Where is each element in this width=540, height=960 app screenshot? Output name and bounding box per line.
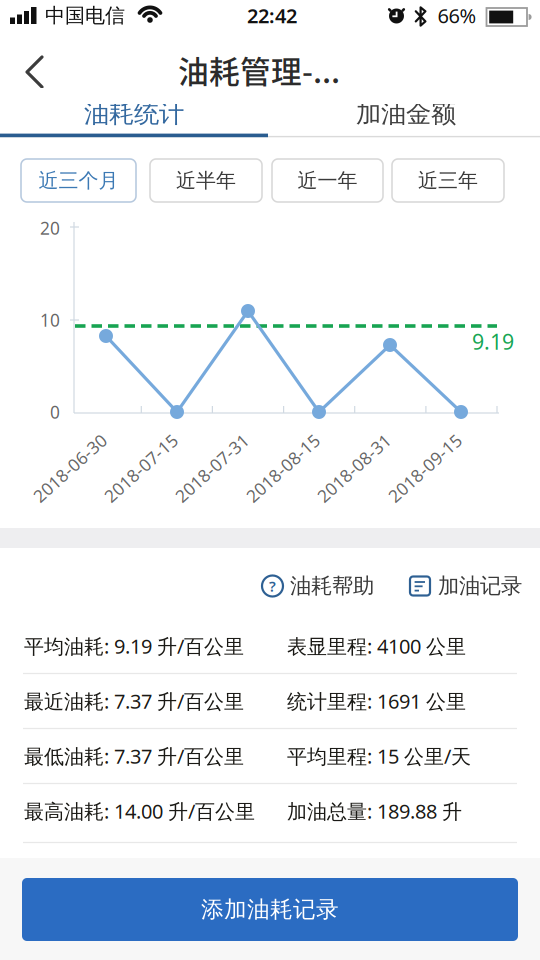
staticText: 油耗帮助: [290, 573, 374, 599]
staticText: 表显里程: 4100 公里: [287, 633, 466, 659]
staticText: 加油记录: [438, 573, 522, 599]
button[interactable]: 近三年: [392, 159, 504, 202]
staticText: 10: [40, 308, 60, 331]
staticText: 2018-07-15: [95, 456, 187, 479]
staticText: 22:42: [247, 2, 297, 29]
button[interactable]: 加油金额: [272, 93, 540, 133]
staticText: 统计里程: 1691 公里: [287, 688, 466, 714]
staticText: 20: [40, 216, 60, 239]
staticText: 油耗统计: [84, 98, 184, 129]
staticText: 近一年: [297, 168, 357, 193]
staticText: 油耗管理-...: [178, 48, 340, 92]
staticText: 2018-08-15: [237, 456, 329, 479]
button[interactable]: 添加油耗记录: [22, 878, 518, 941]
staticText: 0: [50, 400, 60, 423]
staticText: 中国电信: [45, 3, 125, 28]
staticText: 最低油耗: 7.37 升/百公里: [24, 743, 244, 769]
staticText: 近半年: [176, 168, 236, 193]
button[interactable]: 油耗统计: [0, 93, 268, 133]
staticText: 2018-09-15: [379, 456, 471, 479]
staticText: 加油金额: [356, 98, 456, 129]
button[interactable]: 加油记录: [410, 573, 522, 599]
staticText: 最近油耗: 7.37 升/百公里: [24, 688, 244, 714]
staticText: 2018-06-30: [24, 456, 116, 479]
staticText: 2018-08-31: [308, 456, 400, 479]
button[interactable]: ?: [262, 573, 374, 599]
staticText: ?: [269, 576, 276, 596]
staticText: 近三年: [418, 168, 478, 193]
staticText: 2018-07-31: [166, 456, 258, 479]
button[interactable]: 近半年: [150, 159, 262, 202]
staticText: 近三个月: [38, 168, 118, 193]
staticText: 平均里程: 15 公里/天: [287, 743, 471, 769]
staticText: 加油总量: 189.88 升: [287, 798, 462, 824]
button[interactable]: 近三个月: [21, 159, 136, 202]
staticText: 平均油耗: 9.19 升/百公里: [24, 633, 244, 659]
button[interactable]: Back: [14, 50, 58, 94]
staticText: 9.19: [472, 327, 514, 356]
staticText: 66%: [437, 2, 476, 29]
button[interactable]: 近一年: [272, 159, 383, 202]
staticText: 最高油耗: 14.00 升/百公里: [24, 798, 255, 824]
staticText: 添加油耗记录: [201, 896, 339, 923]
